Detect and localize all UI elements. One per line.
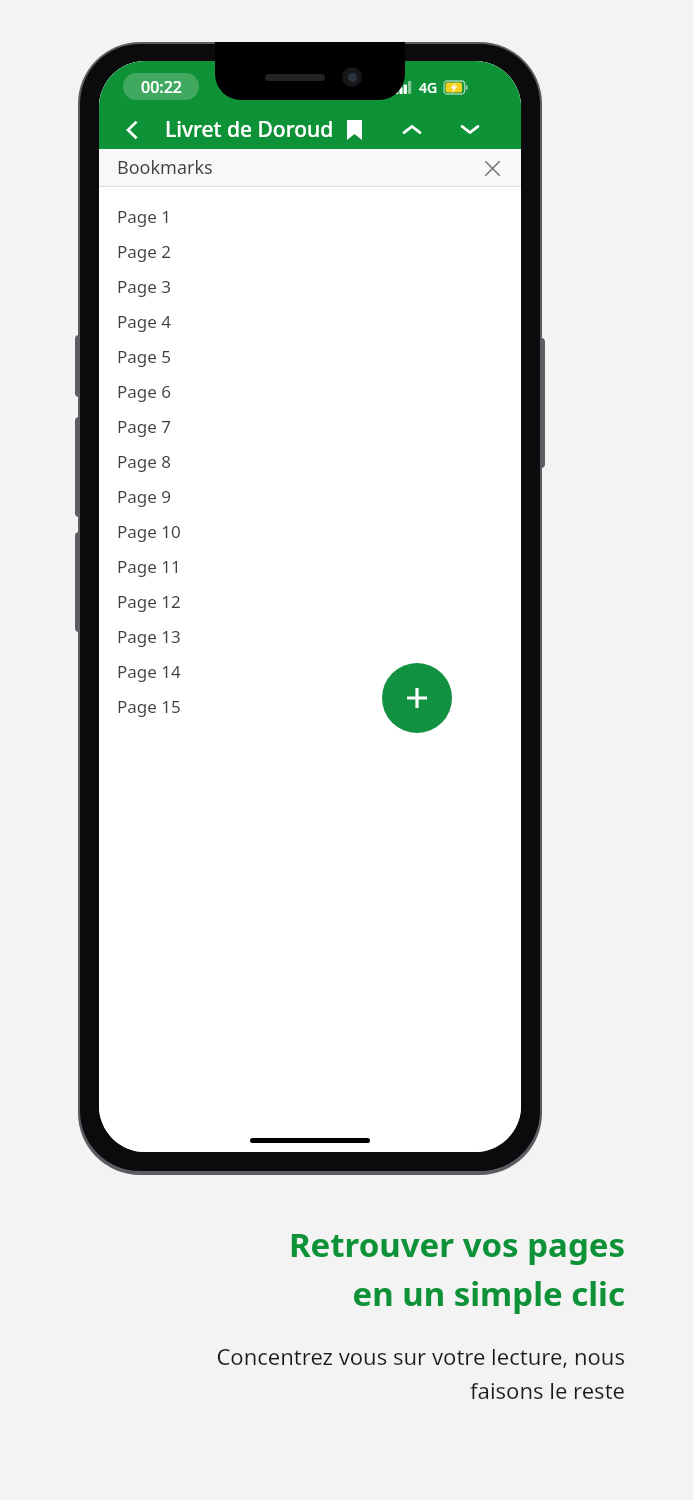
staticText: 00:22 bbox=[141, 76, 182, 98]
button[interactable]: Bookmark bbox=[334, 110, 374, 149]
button[interactable]: Page 4 bbox=[99, 304, 521, 339]
button[interactable]: Page 2 bbox=[99, 234, 521, 269]
button[interactable]: Page 3 bbox=[99, 269, 521, 304]
button[interactable]: Page 9 bbox=[99, 479, 521, 514]
button[interactable]: Previous bbox=[392, 110, 432, 149]
button[interactable]: Page 8 bbox=[99, 444, 521, 479]
button[interactable]: Page 6 bbox=[99, 374, 521, 409]
button[interactable]: Back bbox=[111, 110, 153, 149]
staticText: Concentrez vous sur votre lecture, nous … bbox=[60, 1341, 625, 1405]
button[interactable]: Page 15 bbox=[99, 689, 521, 724]
button[interactable]: Page 7 bbox=[99, 409, 521, 444]
button[interactable]: Next bbox=[450, 110, 490, 149]
staticText: Page 1 bbox=[117, 205, 172, 228]
staticText: Retrouver vos pages en un simple clic bbox=[60, 1222, 625, 1315]
button[interactable]: Page 14 bbox=[99, 654, 521, 689]
staticText: Livret de Doroud bbox=[165, 115, 334, 144]
button[interactable]: Page 1 bbox=[99, 199, 521, 234]
staticText: Page 12 bbox=[117, 590, 181, 613]
staticText: 4G bbox=[419, 78, 438, 97]
staticText: Page 2 bbox=[117, 240, 172, 263]
staticText: Page 3 bbox=[117, 275, 172, 298]
button[interactable]: Bookmarks bbox=[99, 149, 521, 186]
button[interactable]: Page 11 bbox=[99, 549, 521, 584]
button[interactable]: Page 5 bbox=[99, 339, 521, 374]
staticText: Page 15 bbox=[117, 695, 181, 718]
staticText: Page 10 bbox=[117, 520, 181, 543]
staticText: Page 13 bbox=[117, 625, 181, 648]
staticText: Page 6 bbox=[117, 380, 172, 403]
staticText: Page 5 bbox=[117, 345, 172, 368]
button[interactable]: Page 13 bbox=[99, 619, 521, 654]
staticText: Page 11 bbox=[117, 555, 181, 578]
button[interactable]: Page 10 bbox=[99, 514, 521, 549]
button[interactable]: Add bookmark bbox=[382, 663, 452, 733]
staticText: Page 14 bbox=[117, 660, 181, 683]
staticText: Page 9 bbox=[117, 485, 172, 508]
staticText: Page 4 bbox=[117, 310, 172, 333]
staticText: Bookmarks bbox=[117, 155, 213, 180]
button[interactable]: Page 12 bbox=[99, 584, 521, 619]
staticText: Page 7 bbox=[117, 415, 172, 438]
staticText: Page 8 bbox=[117, 450, 172, 473]
button[interactable]: Close bbox=[475, 151, 509, 185]
